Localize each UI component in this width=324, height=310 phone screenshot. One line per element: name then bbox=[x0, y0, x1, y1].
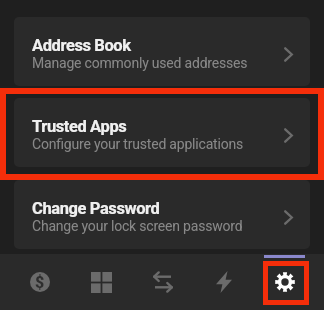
button[interactable]: Address Book bbox=[14, 17, 310, 86]
staticText: Address Book bbox=[32, 36, 131, 55]
staticText: Change Password bbox=[32, 199, 160, 218]
button[interactable]: Transfer bbox=[132, 254, 193, 310]
staticText: Change your lock screen password bbox=[32, 218, 243, 234]
button[interactable]: Change Password bbox=[14, 180, 310, 249]
staticText: $ bbox=[35, 273, 45, 292]
button[interactable]: Settings bbox=[254, 254, 315, 310]
staticText: Manage commonly used addresses bbox=[32, 55, 248, 71]
button[interactable]: Wallet bbox=[9, 254, 71, 310]
button[interactable]: Activity bbox=[193, 254, 254, 310]
staticText: Configure your trusted applications bbox=[32, 136, 243, 152]
staticText: Trusted Apps bbox=[32, 117, 127, 136]
button[interactable]: Apps bbox=[71, 254, 132, 310]
button[interactable]: Trusted Apps bbox=[14, 98, 310, 167]
